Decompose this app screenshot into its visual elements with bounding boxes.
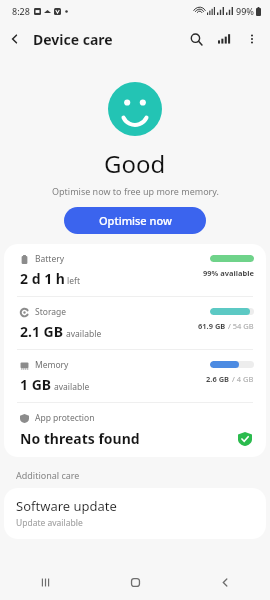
button[interactable]: Search bbox=[182, 25, 210, 53]
staticText: Battery bbox=[35, 253, 65, 265]
staticText: 8:28 bbox=[12, 5, 30, 17]
button[interactable]: Home bbox=[90, 564, 180, 600]
button[interactable]: App protection bbox=[4, 403, 266, 457]
staticText: / 54 GB bbox=[226, 321, 254, 331]
button[interactable]: Usage statistics bbox=[210, 25, 238, 53]
staticText: Memory bbox=[35, 359, 69, 371]
button[interactable]: Storage bbox=[4, 297, 266, 349]
staticText: 2 d 1 h bbox=[20, 269, 65, 288]
button[interactable]: Optimise now bbox=[64, 207, 206, 234]
staticText: App protection bbox=[35, 412, 95, 424]
staticText: 99% bbox=[236, 5, 254, 17]
staticText: 99% available bbox=[203, 268, 254, 278]
staticText: 1 GB bbox=[20, 375, 52, 394]
staticText: left bbox=[67, 275, 80, 287]
staticText: 2.6 GB bbox=[206, 374, 230, 384]
button[interactable]: Software update bbox=[4, 488, 266, 539]
staticText: 2.1 GB bbox=[20, 322, 64, 341]
staticText: available bbox=[54, 381, 90, 393]
staticText: No threats found bbox=[20, 429, 140, 448]
staticText: Software update bbox=[16, 497, 117, 515]
staticText: Additional care bbox=[16, 469, 80, 481]
staticText: Optimise now to free up more memory. bbox=[52, 185, 219, 197]
button[interactable]: Back bbox=[0, 24, 30, 54]
button[interactable]: More options bbox=[238, 25, 266, 53]
staticText: available bbox=[66, 328, 102, 340]
staticText: Storage bbox=[35, 306, 67, 318]
button[interactable]: Back bbox=[180, 564, 270, 600]
staticText: 61.9 GB bbox=[198, 321, 226, 331]
button[interactable]: Recent apps bbox=[0, 564, 90, 600]
button[interactable]: Memory bbox=[4, 350, 266, 402]
staticText: Good bbox=[104, 147, 166, 180]
staticText: Update available bbox=[16, 517, 83, 529]
staticText: Optimise now bbox=[99, 213, 172, 228]
staticText: Device care bbox=[33, 30, 113, 49]
staticText: / 4 GB bbox=[230, 374, 254, 384]
button[interactable]: Battery bbox=[4, 244, 266, 296]
